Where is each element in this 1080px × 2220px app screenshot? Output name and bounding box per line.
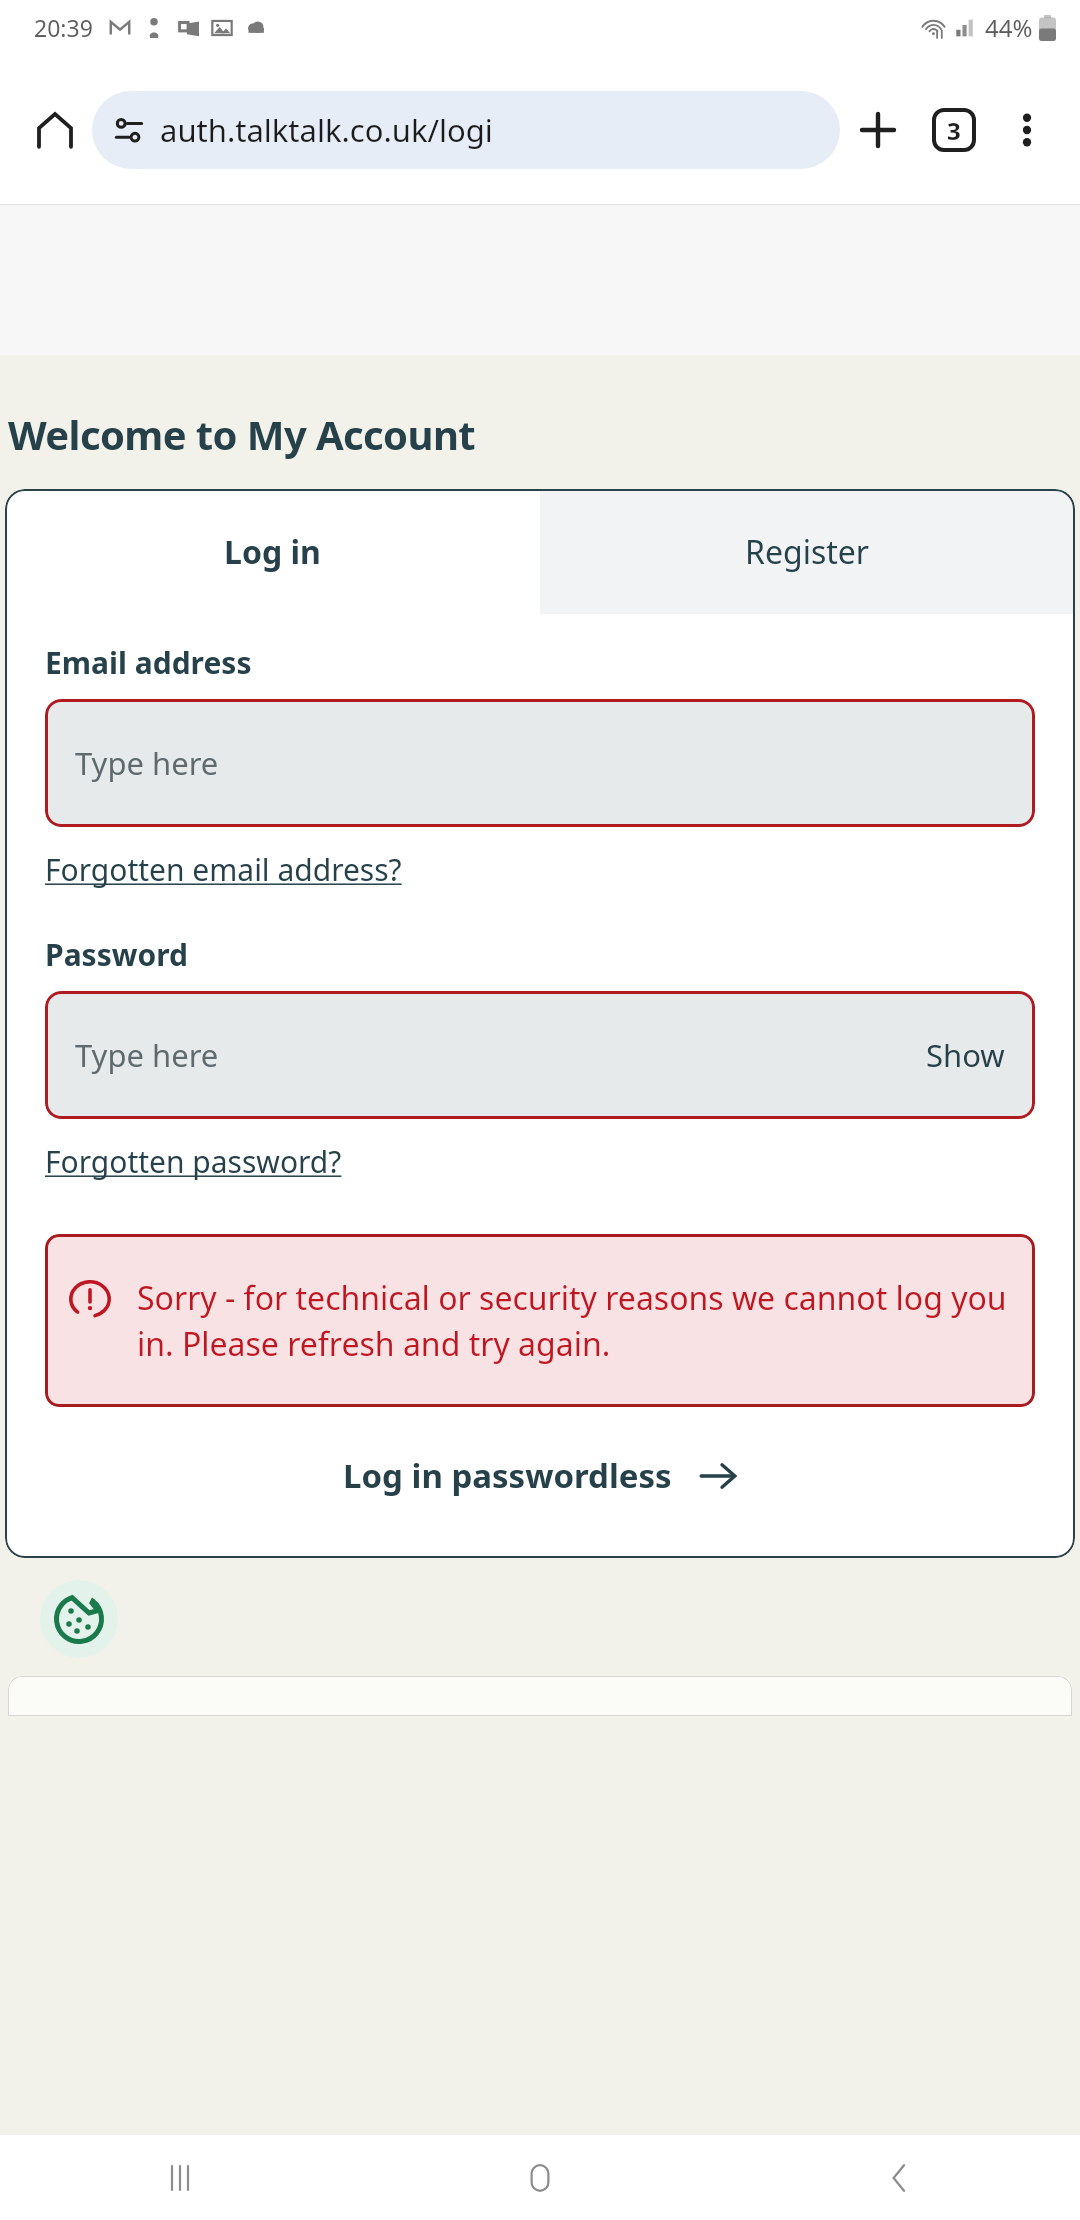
button[interactable]: Cookie settings <box>40 1580 118 1658</box>
staticText: Forgotten email address? <box>45 849 402 890</box>
button[interactable]: Forgotten password? <box>45 1141 342 1182</box>
button[interactable]: Home <box>360 2135 720 2220</box>
staticText: Forgotten password? <box>45 1141 342 1182</box>
button[interactable]: Recent apps <box>0 2135 360 2220</box>
button[interactable]: Back <box>720 2135 1080 2220</box>
button[interactable]: Home <box>18 93 92 167</box>
staticText: 44% <box>985 11 1033 44</box>
button[interactable]: Register <box>540 489 1075 614</box>
staticText: Type here <box>75 1034 219 1076</box>
staticText: Log in <box>224 530 321 574</box>
staticText: 3 <box>947 114 961 147</box>
staticText: Type here <box>75 742 219 784</box>
staticText: Log in passwordless <box>343 1453 672 1498</box>
staticText: Password <box>45 934 188 975</box>
button[interactable]: New tab <box>840 92 916 168</box>
button[interactable]: Forgotten email address? <box>45 849 402 890</box>
staticText: 20:39 <box>34 12 93 43</box>
button[interactable]: auth.talktalk.co.uk/logi <box>92 91 840 169</box>
button[interactable]: Log in passwordless <box>45 1453 1035 1498</box>
button[interactable]: More options <box>992 95 1062 165</box>
button[interactable]: Log in <box>5 489 540 614</box>
staticText: Register <box>745 530 870 574</box>
staticText: Show <box>926 1034 1005 1076</box>
button[interactable]: Tabs: 3 open <box>916 92 992 168</box>
button[interactable]: Type here <box>45 991 1035 1119</box>
staticText: Email address <box>45 642 252 683</box>
staticText: Welcome to My Account <box>8 407 476 461</box>
button[interactable]: Type here <box>45 699 1035 827</box>
staticText: auth.talktalk.co.uk/logi <box>160 109 493 151</box>
staticText: Sorry - for technical or security reason… <box>137 1276 1011 1365</box>
